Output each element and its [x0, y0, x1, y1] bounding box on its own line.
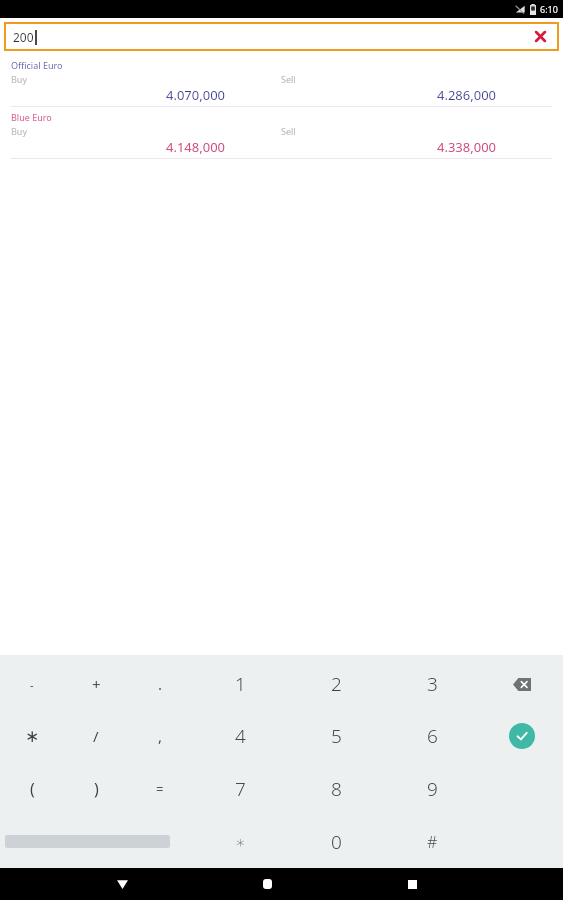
staticText: Official Euro — [11, 59, 63, 71]
staticText: 5 — [331, 723, 342, 749]
button[interactable]: + — [64, 658, 128, 710]
staticText: Sell — [281, 125, 296, 137]
button[interactable]: ) — [64, 762, 128, 815]
button[interactable]: 0 — [288, 815, 384, 868]
button[interactable]: Back — [98, 868, 146, 900]
button[interactable]: . — [128, 658, 192, 710]
staticText: + — [92, 674, 101, 694]
staticText: 4.148,000 — [11, 138, 225, 156]
staticText: ) — [94, 778, 99, 800]
staticText: 4.338,000 — [281, 138, 496, 156]
staticText: 200 — [13, 29, 34, 45]
staticText: - — [30, 677, 34, 692]
button[interactable]: ∗ — [192, 815, 288, 868]
button[interactable]: 6 — [384, 710, 480, 762]
staticText: 1 — [235, 671, 246, 697]
button[interactable]: 200 — [4, 22, 559, 51]
staticText: 8 — [331, 776, 342, 802]
staticText: Buy — [11, 73, 28, 85]
button[interactable]: # — [384, 815, 480, 868]
staticText: 6 — [427, 723, 438, 749]
button[interactable]: Clear — [521, 22, 559, 51]
staticText: / — [93, 726, 99, 746]
staticText: 4 — [235, 723, 246, 749]
staticText: 0 — [331, 829, 342, 855]
staticText: . — [158, 674, 163, 694]
staticText: 6:10 — [540, 3, 558, 15]
button[interactable]: Backspace — [480, 658, 563, 710]
staticText: = — [156, 780, 164, 798]
button[interactable]: 2 — [288, 658, 384, 710]
staticText: 7 — [235, 776, 246, 802]
staticText: 4.070,000 — [11, 86, 225, 104]
button[interactable]: ( — [0, 762, 64, 815]
button[interactable]: 3 — [384, 658, 480, 710]
button[interactable]: / — [64, 710, 128, 762]
staticText: Buy — [11, 125, 28, 137]
button[interactable]: Recent apps — [388, 868, 436, 900]
staticText: ( — [30, 778, 35, 800]
button[interactable]: Space — [0, 815, 192, 868]
staticText: ∗ — [25, 726, 40, 746]
staticText: , — [158, 726, 163, 746]
staticText: 3 — [427, 671, 438, 697]
button[interactable]: Blue Euro — [0, 107, 563, 158]
button[interactable]: ∗ — [0, 710, 64, 762]
button[interactable]: 1 — [192, 658, 288, 710]
button[interactable]: 5 — [288, 710, 384, 762]
staticText: Blue Euro — [11, 111, 52, 123]
button[interactable]: 7 — [192, 762, 288, 815]
button[interactable]: - — [0, 658, 64, 710]
staticText: 2 — [331, 671, 342, 697]
button[interactable]: 9 — [384, 762, 480, 815]
staticText: 4.286,000 — [281, 86, 496, 104]
staticText: 9 — [427, 776, 438, 802]
button[interactable]: , — [128, 710, 192, 762]
staticText: # — [427, 831, 438, 853]
button[interactable]: 4 — [192, 710, 288, 762]
staticText: Sell — [281, 73, 296, 85]
button[interactable]: Official Euro — [0, 55, 563, 106]
button[interactable]: 8 — [288, 762, 384, 815]
button[interactable]: Home — [243, 868, 291, 900]
button[interactable]: = — [128, 762, 192, 815]
button[interactable]: Enter — [480, 710, 563, 762]
staticText: ∗ — [235, 832, 246, 852]
